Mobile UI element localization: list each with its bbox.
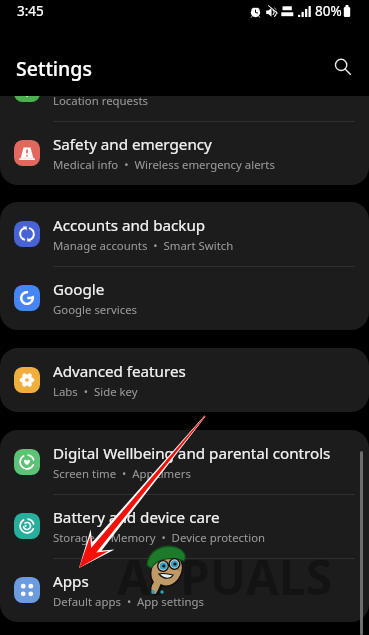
staticText: 3:45 xyxy=(17,2,44,20)
button[interactable]: Digital Wellbeing and parental controls xyxy=(0,430,369,494)
button[interactable]: Battery and device care xyxy=(0,494,369,558)
staticText: 80% xyxy=(315,2,342,20)
button[interactable]: Safety and emergency xyxy=(0,121,369,185)
staticText: Storage • Memory • Device protection xyxy=(53,530,266,546)
staticText: Medical info • Wireless emergency alerts xyxy=(53,157,275,173)
staticText: Accounts and backup xyxy=(53,215,206,236)
staticText: Google xyxy=(53,279,105,300)
staticText: APPUALS xyxy=(117,544,333,609)
button[interactable]: Location xyxy=(0,96,369,121)
staticText: Digital Wellbeing and parental controls xyxy=(53,443,331,464)
staticText: Screen time • App timers xyxy=(53,466,191,482)
staticText: Google services xyxy=(53,302,138,318)
button[interactable]: Search xyxy=(331,55,354,78)
button[interactable]: Advanced features xyxy=(0,348,369,412)
staticText: Default apps • App settings xyxy=(53,594,204,610)
staticText: Settings xyxy=(16,55,92,82)
button[interactable]: Apps xyxy=(0,558,369,622)
staticText: Battery and device care xyxy=(53,507,220,528)
staticText: Manage accounts • Smart Switch xyxy=(53,238,234,254)
staticText: Safety and emergency xyxy=(53,134,212,155)
staticText: Apps xyxy=(53,571,89,592)
staticText: Labs • Side key xyxy=(53,384,138,400)
button[interactable]: Google xyxy=(0,266,369,330)
staticText: Advanced features xyxy=(53,361,186,382)
button[interactable]: Accounts and backup xyxy=(0,202,369,266)
staticText: Location requests xyxy=(53,96,149,109)
